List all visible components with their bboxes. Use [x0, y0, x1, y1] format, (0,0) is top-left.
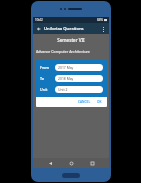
staticText: OK [97, 100, 102, 104]
button[interactable]: 2017 May [55, 64, 103, 71]
button[interactable]: Distributed System [33, 57, 109, 68]
staticText: Mobile Computing [36, 82, 68, 87]
button[interactable]: Advance Computer Architecture [33, 46, 109, 57]
staticText: From [40, 65, 49, 70]
staticText: Advance Computer Architecture [36, 49, 90, 54]
button[interactable]: Artificial Intelligence [33, 68, 109, 79]
staticText: 84% [97, 18, 103, 22]
button[interactable]: Mobile Computing [33, 79, 109, 90]
staticText: Unit [40, 87, 48, 92]
button[interactable]: CANCEL [76, 99, 93, 105]
staticText: 10:42 [35, 18, 43, 22]
staticText: Distributed System [36, 60, 69, 65]
button[interactable]: Back [46, 159, 54, 167]
button[interactable]: Back [35, 25, 43, 33]
staticText: 2018 May [58, 76, 74, 81]
staticText: To [40, 76, 44, 81]
button[interactable]: OK [95, 99, 104, 105]
button[interactable]: More options [99, 25, 107, 33]
button[interactable]: Home [67, 159, 75, 167]
button[interactable]: Recent apps [88, 159, 96, 167]
staticText: Semester VII [57, 37, 85, 43]
staticText: Artificial Intelligence [36, 71, 71, 76]
staticText: 2017 May [58, 65, 74, 70]
button[interactable]: Unit 2 [55, 86, 103, 93]
staticText: CANCEL [78, 100, 91, 104]
staticText: Unit 2 [58, 87, 68, 92]
button[interactable]: 2018 May [55, 75, 103, 82]
staticText: Uniloriaa Questions [44, 26, 84, 32]
